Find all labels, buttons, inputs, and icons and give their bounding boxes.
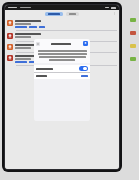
button[interactable] (7, 31, 117, 41)
button[interactable] (34, 65, 90, 72)
button[interactable] (45, 12, 63, 16)
button[interactable] (7, 42, 117, 52)
button[interactable] (66, 12, 79, 16)
button[interactable] (7, 53, 117, 65)
button[interactable]: More options (113, 12, 116, 15)
button[interactable]: Account (83, 41, 88, 46)
button[interactable] (34, 73, 90, 79)
button[interactable] (7, 18, 117, 30)
button[interactable]: Close (36, 42, 40, 46)
